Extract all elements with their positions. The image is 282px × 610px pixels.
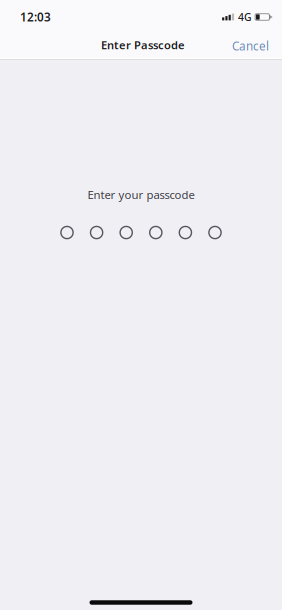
button[interactable]: Cancel bbox=[224, 29, 277, 59]
staticText: Enter Passcode bbox=[101, 37, 185, 53]
staticText: 12:03 bbox=[20, 9, 51, 25]
staticText: Cancel bbox=[232, 38, 269, 54]
staticText: Enter your passcode bbox=[87, 187, 194, 202]
staticText: 4G bbox=[238, 10, 252, 24]
button[interactable]: 0 of 6 digits entered bbox=[51, 218, 231, 247]
